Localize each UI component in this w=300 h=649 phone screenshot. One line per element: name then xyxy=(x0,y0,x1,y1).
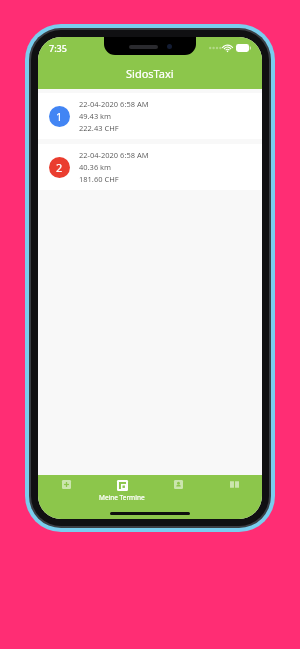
button[interactable]: Meine Termine xyxy=(94,475,150,507)
staticText: 22-04-2020 6:58 AM xyxy=(79,150,149,160)
staticText: 222.43 CHF xyxy=(79,123,119,133)
staticText: 22-04-2020 6:58 AM xyxy=(79,99,149,109)
button[interactable]: 1 xyxy=(38,93,262,139)
staticText: 2 xyxy=(56,160,63,175)
staticText: 7:35 xyxy=(49,42,67,54)
staticText: SidosTaxi xyxy=(126,66,174,81)
button[interactable]: Info xyxy=(206,475,262,507)
button[interactable]: 2 xyxy=(38,144,262,190)
staticText: 40.36 km xyxy=(79,162,112,172)
staticText: Meine Termine xyxy=(99,493,145,502)
staticText: 1 xyxy=(56,109,63,124)
staticText: 181.60 CHF xyxy=(79,174,119,184)
button[interactable]: Profil xyxy=(150,475,206,507)
button[interactable]: Termin hinzufügen xyxy=(38,475,94,507)
staticText: 49.43 km xyxy=(79,111,112,121)
